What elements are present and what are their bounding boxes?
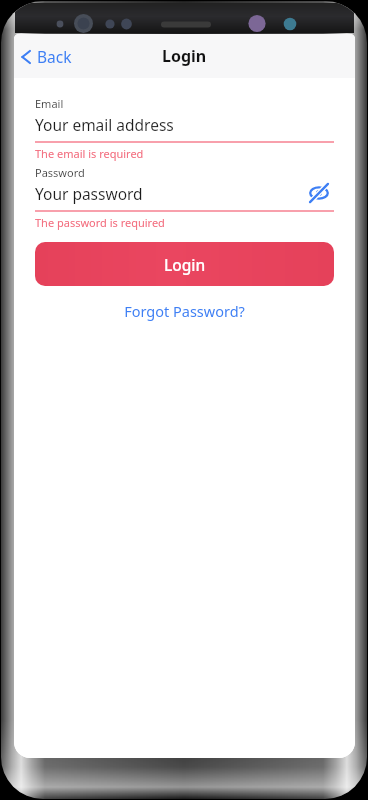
staticText: Login	[162, 45, 207, 67]
staticText: Password	[35, 165, 85, 180]
staticText: Login	[164, 254, 206, 275]
staticText: Back	[37, 46, 72, 67]
staticText: Your email address	[35, 114, 174, 135]
button[interactable]: Login	[35, 242, 334, 286]
button[interactable]: Your password	[35, 182, 334, 204]
staticText: Email	[35, 96, 64, 111]
staticText: The password is required	[35, 215, 165, 230]
button[interactable]: Show password	[304, 182, 334, 204]
button[interactable]: Your email address	[35, 113, 334, 135]
staticText: The email is required	[35, 146, 144, 161]
button[interactable]: Back	[14, 40, 82, 73]
staticText: Your password	[35, 183, 143, 204]
staticText: Forgot Password?	[124, 301, 245, 321]
other: Back	[19, 47, 33, 67]
button[interactable]: Forgot Password?	[118, 299, 251, 323]
